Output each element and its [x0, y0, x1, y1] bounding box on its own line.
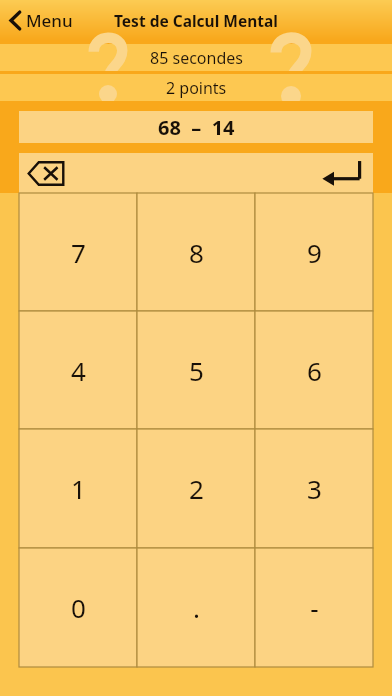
staticText: . — [193, 590, 200, 625]
staticText: 3 — [307, 471, 322, 506]
button[interactable]: 9 — [255, 193, 373, 311]
button[interactable]: 3 — [255, 429, 373, 548]
button[interactable]: 1 — [19, 429, 137, 548]
staticText: 7 — [71, 235, 86, 270]
button[interactable]: - — [255, 548, 373, 667]
button[interactable]: 8 — [137, 193, 255, 311]
staticText: 5 — [189, 353, 204, 388]
button[interactable]: Enter — [317, 155, 367, 191]
staticText: 85 secondes — [150, 47, 243, 69]
button[interactable]: 68 – 14 — [19, 111, 373, 143]
button[interactable]: Backspace — [23, 156, 69, 190]
staticText: 6 — [307, 353, 322, 388]
staticText: 8 — [189, 235, 204, 270]
button[interactable]: 7 — [19, 193, 137, 311]
staticText: 2 — [189, 471, 204, 506]
staticText: 9 — [307, 235, 322, 270]
staticText: - — [310, 590, 319, 625]
staticText: 2 points — [166, 77, 227, 99]
staticText: 0 — [71, 590, 86, 625]
button[interactable]: 6 — [255, 311, 373, 429]
staticText: 68 – 14 — [158, 114, 235, 141]
button[interactable]: 0 — [19, 548, 137, 667]
staticText: 4 — [71, 353, 86, 388]
staticText: 1 — [71, 471, 86, 506]
button[interactable]: . — [137, 548, 255, 667]
button[interactable]: 2 — [137, 429, 255, 548]
staticText: Menu — [26, 9, 73, 32]
button[interactable]: Menu — [8, 9, 73, 32]
staticText: Test de Calcul Mental — [114, 10, 278, 31]
button[interactable]: 5 — [137, 311, 255, 429]
button[interactable]: 4 — [19, 311, 137, 429]
